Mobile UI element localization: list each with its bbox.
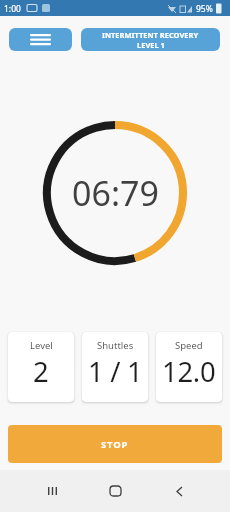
staticText: Shuttles (97, 339, 134, 352)
staticText: 1 / 1 (88, 353, 143, 390)
staticText: Level (30, 339, 53, 352)
button[interactable]: INTERMITTENT RECOVERY (81, 28, 220, 51)
staticText: Speed (175, 339, 203, 352)
staticText: 06:79 (72, 170, 159, 216)
button[interactable]: Speed (156, 332, 222, 402)
staticText: 12.0 (162, 353, 216, 390)
button[interactable] (35, 474, 69, 508)
button[interactable]: Shuttles (82, 332, 148, 402)
button[interactable]: Level (8, 332, 74, 402)
button[interactable]: STOP (8, 425, 222, 463)
button[interactable] (9, 28, 72, 51)
staticText: 1:00 (4, 3, 21, 15)
staticText: INTERMITTENT RECOVERY (102, 30, 199, 40)
button[interactable] (162, 474, 196, 508)
staticText: LEVEL 1 (137, 40, 165, 50)
button[interactable] (98, 474, 132, 508)
staticText: STOP (101, 438, 129, 451)
staticText: 95% (196, 3, 213, 15)
staticText: 2 (33, 353, 49, 390)
